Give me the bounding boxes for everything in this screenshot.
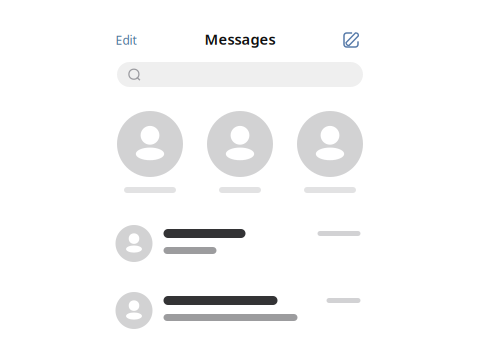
button[interactable]: Conversation	[115, 292, 364, 329]
button[interactable]: Search	[117, 62, 363, 87]
button[interactable]: Pinned conversation	[117, 111, 183, 193]
button[interactable]: Compose	[342, 31, 359, 48]
staticText: Edit	[115, 32, 136, 48]
button[interactable]: Pinned conversation	[207, 111, 273, 193]
staticText: Messages	[204, 29, 275, 49]
button[interactable]: Edit	[115, 31, 136, 47]
button[interactable]: Conversation	[115, 225, 364, 262]
button[interactable]: Pinned conversation	[297, 111, 363, 193]
